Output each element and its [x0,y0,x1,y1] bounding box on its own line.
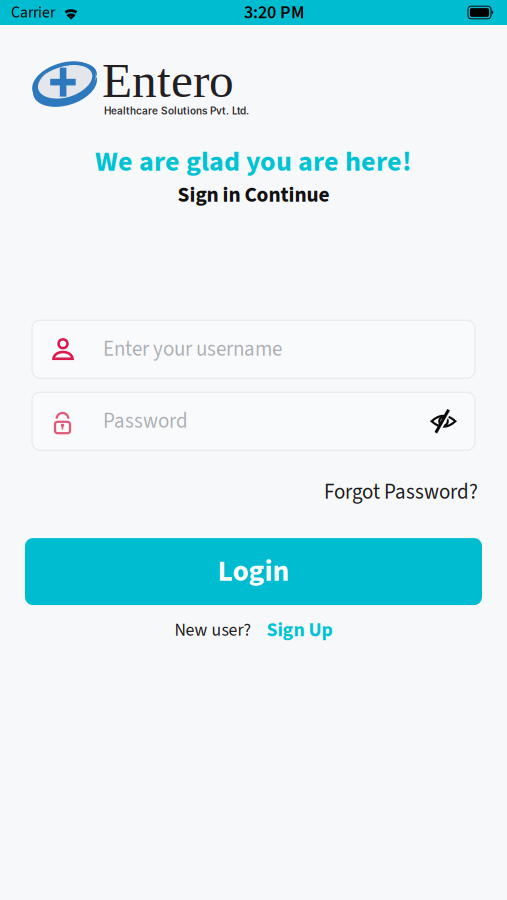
staticText: Sign Up [266,616,332,644]
button[interactable]: Enter your username [32,320,475,378]
button[interactable]: Password [32,392,475,450]
staticText: Password [103,406,188,436]
staticText: Enter your username [103,334,282,364]
staticText: Sign in Continue [177,180,329,210]
staticText: Forgot Password? [324,477,478,507]
staticText: Healthcare Solutions Pvt. Ltd. [104,105,249,117]
button[interactable]: Forgot Password? [324,477,478,507]
staticText: Login [217,551,289,592]
button[interactable]: Login [25,538,482,605]
staticText: Entero [102,53,234,108]
button[interactable]: Sign Up [266,616,332,644]
staticText: We are glad you are here! [95,142,412,182]
staticText: Carrier [11,1,55,24]
staticText: New user? [174,617,251,643]
staticText: 3:20 PM [244,0,305,25]
